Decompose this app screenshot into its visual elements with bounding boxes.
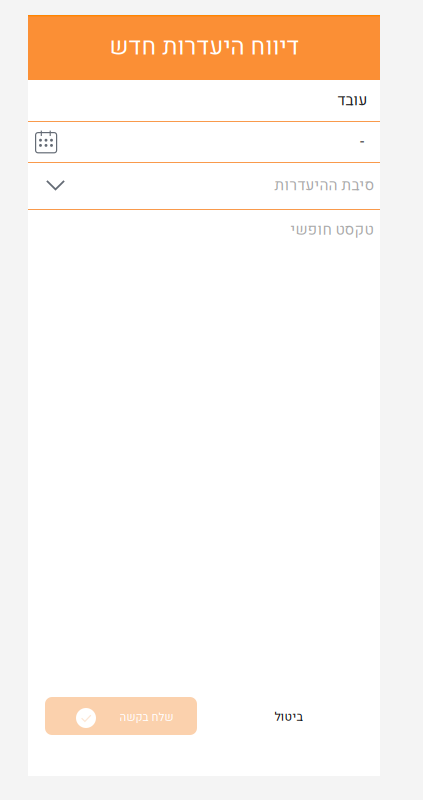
staticText: - [360,130,364,153]
button[interactable]: טקסט חופשי [28,208,380,252]
button[interactable]: עובד [28,80,380,121]
staticText: דיווח היעדרות חדש [109,29,299,65]
staticText: עובד [337,89,367,112]
button[interactable]: סיבת ההיעדרות [28,162,380,209]
button[interactable]: ביטול [255,698,321,736]
staticText: שלח בקשה [119,709,173,726]
staticText: סיבת ההיעדרות [274,174,374,197]
staticText: טקסט חופשי [290,219,373,241]
button[interactable]: שלח בקשה [45,697,197,735]
button[interactable]: - [28,121,380,162]
staticText: ביטול [274,708,302,726]
